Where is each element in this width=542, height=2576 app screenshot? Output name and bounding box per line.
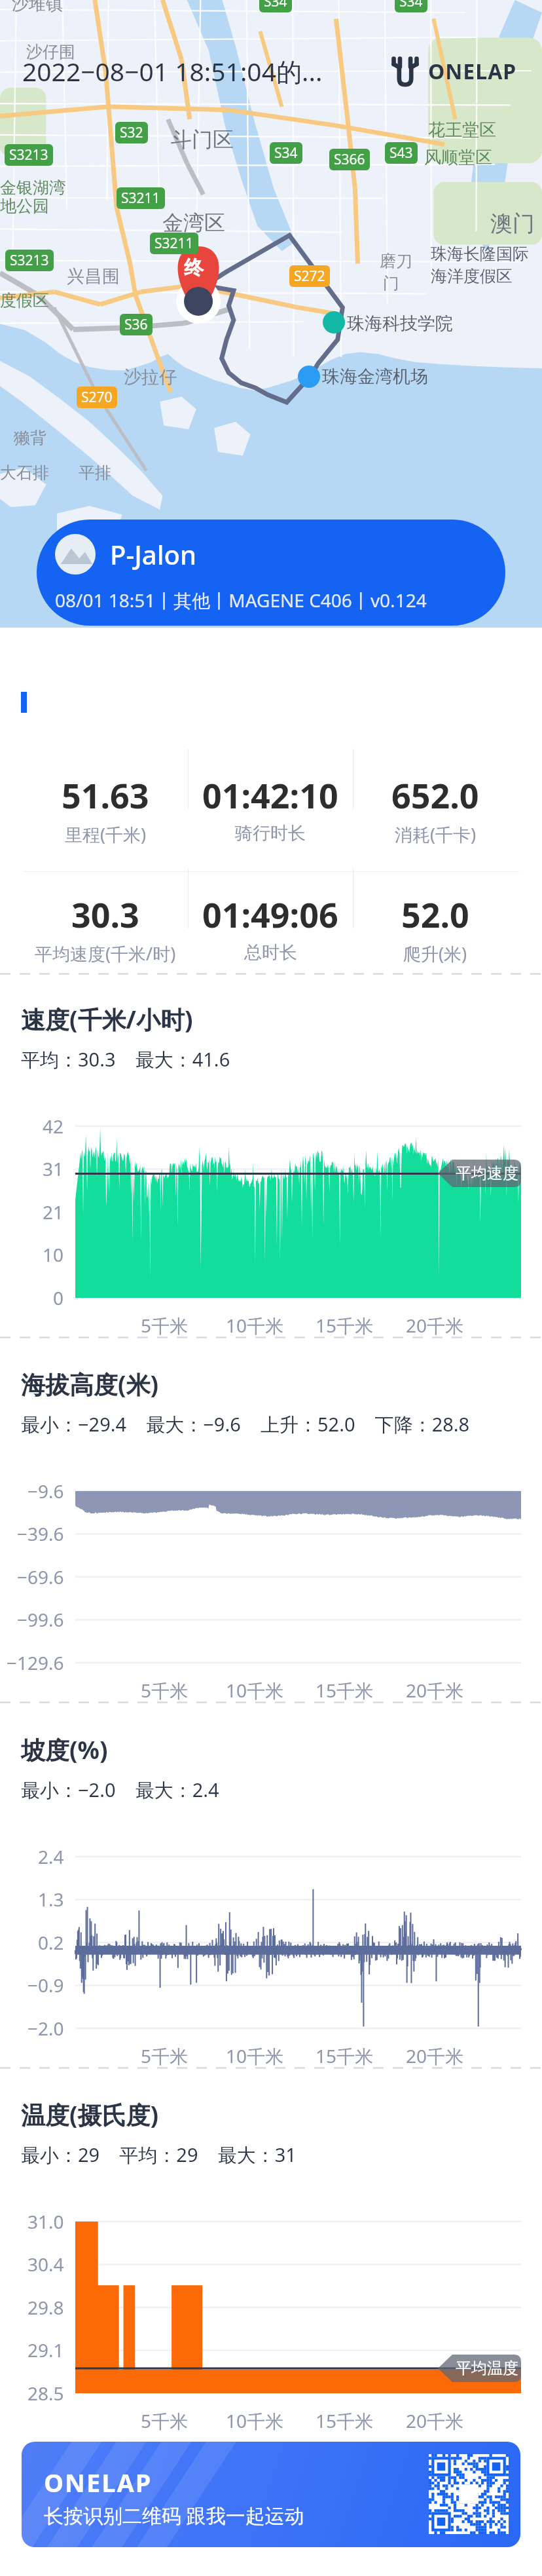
button[interactable]: P-Jalon: [37, 520, 505, 626]
staticText: S3213: [9, 145, 48, 164]
staticText: S3211: [154, 234, 194, 253]
button[interactable]: 52.0: [353, 891, 518, 963]
staticText: 平排: [79, 463, 111, 483]
staticText: S272: [294, 267, 325, 286]
staticText: 花王堂区: [428, 119, 496, 141]
staticText: 31: [43, 1156, 64, 1181]
staticText: 珠海科技学院: [347, 313, 453, 335]
staticText: 15千米: [316, 2043, 374, 2068]
staticText: 1.3: [38, 1887, 64, 1912]
staticText: S34: [274, 143, 298, 162]
button[interactable]: 51.63: [23, 772, 188, 844]
staticText: 沙堆镇: [12, 0, 63, 15]
button[interactable]: 01:42:10: [188, 772, 353, 844]
staticText: 5千米: [141, 1313, 189, 1338]
staticText: −99.6: [17, 1607, 64, 1632]
staticText: 最小：29 平均：29 最大：31: [21, 2142, 297, 2168]
staticText: −39.6: [17, 1521, 64, 1546]
staticText: 消耗(千卡): [395, 822, 477, 844]
staticText: 30.3: [71, 891, 139, 938]
staticText: 29.8: [27, 2295, 64, 2320]
staticText: 终: [184, 256, 204, 280]
staticText: −2.0: [27, 2016, 64, 2041]
staticText: 20千米: [406, 1678, 464, 1703]
staticText: 652.0: [391, 772, 479, 818]
staticText: 珠海长隆国际: [431, 244, 529, 264]
staticText: ONELAP: [44, 2465, 153, 2499]
staticText: −9.6: [27, 1479, 64, 1504]
staticText: 獭背: [14, 428, 46, 448]
staticText: 21: [43, 1200, 64, 1224]
staticText: 10千米: [226, 1313, 284, 1338]
staticText: 沙仔围: [26, 42, 75, 62]
staticText: 门: [383, 273, 399, 294]
staticText: 金湾区: [162, 210, 225, 236]
staticText: 10: [43, 1242, 64, 1267]
staticText: 2022−08−01 18:51:04的...: [22, 54, 323, 88]
staticText: 51.63: [62, 772, 149, 818]
staticText: S366: [334, 150, 365, 169]
staticText: 磨刀: [380, 251, 412, 271]
staticText: 斗门区: [171, 126, 234, 153]
staticText: 沙拉仔: [124, 366, 177, 388]
staticText: 5千米: [141, 2043, 189, 2068]
staticText: 爬升(米): [403, 941, 467, 963]
staticText: S43: [389, 143, 413, 162]
staticText: 30.4: [27, 2252, 64, 2277]
staticText: 42: [43, 1114, 64, 1139]
staticText: 地公园: [0, 196, 49, 216]
staticText: S270: [81, 388, 113, 407]
staticText: 速度(千米/小时): [21, 1002, 193, 1036]
staticText: S3213: [10, 251, 49, 270]
button[interactable]: 01:49:06: [188, 891, 353, 963]
staticText: 长按识别二维码 跟我一起运动: [44, 2502, 304, 2529]
staticText: 2.4: [38, 1844, 64, 1869]
staticText: 最小：−2.0 最大：2.4: [21, 1777, 219, 1803]
staticText: 29.1: [27, 2338, 64, 2362]
staticText: 0.2: [38, 1930, 64, 1955]
staticText: 52.0: [401, 891, 469, 938]
staticText: 澳门: [490, 210, 535, 238]
staticText: S3211: [121, 189, 160, 208]
staticText: 10千米: [226, 2408, 284, 2433]
staticText: 01:42:10: [202, 772, 338, 818]
staticText: 平均温度: [456, 2358, 518, 2378]
staticText: 总时长: [244, 941, 297, 963]
staticText: −69.6: [17, 1564, 64, 1589]
staticText: 风顺堂区: [424, 147, 492, 168]
button[interactable]: 652.0: [353, 772, 518, 844]
staticText: 10千米: [226, 2043, 284, 2068]
staticText: 10千米: [226, 1678, 284, 1703]
staticText: 珠海金湾机场: [322, 366, 428, 388]
staticText: 01:49:06: [202, 891, 338, 938]
staticText: −0.9: [27, 1973, 64, 1998]
staticText: 08/01 18:51丨其他丨MAGENE C406丨v0.124: [55, 588, 427, 613]
staticText: 里程(千米): [65, 822, 147, 844]
staticText: 15千米: [316, 2408, 374, 2433]
staticText: 坡度(%): [21, 1733, 108, 1766]
staticText: −129.6: [7, 1650, 64, 1675]
staticText: 温度(摄氏度): [21, 2098, 159, 2131]
staticText: 骑行时长: [235, 822, 306, 844]
staticText: 28.5: [27, 2381, 64, 2406]
staticText: 平均速度: [456, 1164, 518, 1183]
staticText: S34: [264, 0, 287, 11]
staticText: S32: [120, 123, 143, 142]
staticText: 20千米: [406, 1313, 464, 1338]
staticText: 金银湖湾: [0, 178, 65, 198]
button[interactable]: 30.3: [23, 891, 188, 963]
staticText: 15千米: [316, 1313, 374, 1338]
staticText: 20千米: [406, 2408, 464, 2433]
button[interactable]: ONELAP: [22, 2442, 520, 2547]
staticText: 海拔高度(米): [21, 1367, 159, 1401]
staticText: 平均速度(千米/时): [35, 941, 176, 963]
staticText: S36: [124, 315, 148, 334]
staticText: 5千米: [141, 2408, 189, 2433]
staticText: 平均：30.3 最大：41.6: [21, 1046, 230, 1072]
staticText: 海洋度假区: [431, 266, 513, 286]
staticText: P-Jalon: [110, 537, 197, 572]
staticText: 兴昌围: [67, 265, 120, 288]
staticText: ONELAP: [428, 57, 517, 86]
staticText: 20千米: [406, 2043, 464, 2068]
staticText: 度假区: [0, 290, 49, 311]
